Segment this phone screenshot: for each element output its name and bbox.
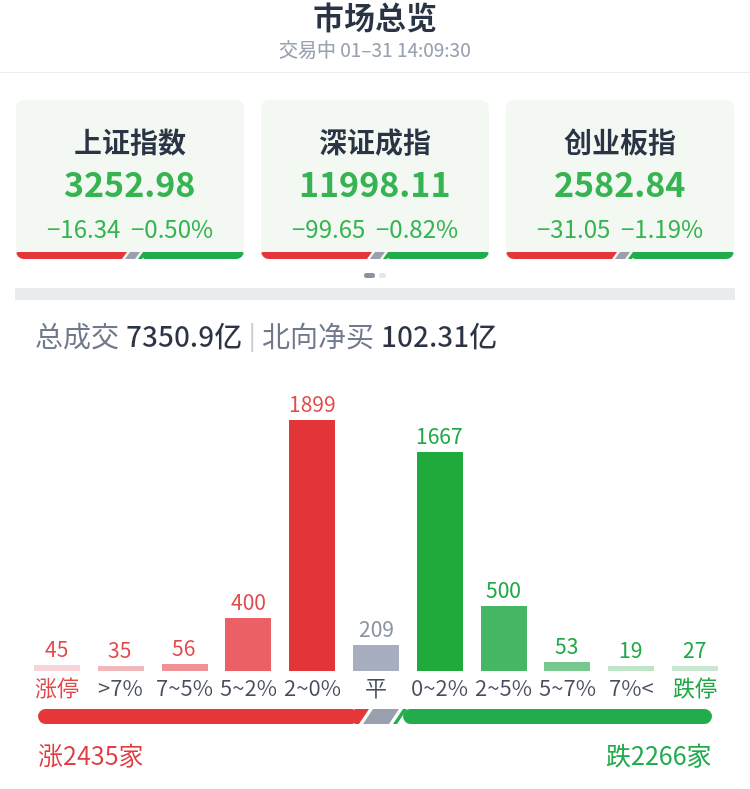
staticText: 500 [486, 574, 521, 600]
staticText: 5~2% [220, 670, 277, 694]
staticText: 北向净买 [262, 315, 381, 345]
staticText: 2582.84 [554, 158, 686, 198]
staticText: >7% [98, 670, 143, 694]
staticText: 0~2% [411, 670, 468, 694]
staticText: 19 [619, 634, 643, 660]
staticText: −99.65 −0.82% [292, 210, 459, 238]
staticText: 涨停 [35, 670, 80, 694]
staticText: 跌2266家 [606, 736, 712, 766]
staticText: 400 [231, 586, 266, 612]
staticText: 5~7% [539, 670, 596, 694]
staticText: 7~5% [156, 670, 213, 694]
staticText: 56 [172, 632, 196, 658]
staticText: 涨2435家 [38, 736, 144, 766]
staticText: 7350.9亿 [126, 315, 243, 345]
staticText: 7%< [609, 670, 654, 694]
staticText: 35 [108, 634, 132, 660]
button[interactable]: 深证成指 [261, 100, 489, 259]
staticText: 45 [45, 633, 69, 659]
staticText: −16.34 −0.50% [47, 210, 214, 238]
staticText: −31.05 −1.19% [537, 210, 704, 238]
staticText: 102.31亿 [381, 315, 498, 345]
staticText: 创业板指 [564, 121, 677, 153]
staticText: 总成交 [35, 315, 126, 345]
staticText: 27 [683, 634, 707, 660]
button[interactable]: 创业板指 [506, 100, 734, 259]
staticText: | [243, 315, 262, 345]
staticText: 1899 [289, 388, 336, 414]
button[interactable]: 上证指数 [16, 100, 244, 259]
staticText: 3252.98 [64, 158, 196, 198]
staticText: 1667 [416, 420, 463, 446]
staticText: 平 [365, 670, 388, 694]
staticText: 2~0% [284, 670, 341, 694]
staticText: 深证成指 [319, 121, 432, 153]
staticText: 市场总览 [313, 0, 437, 29]
staticText: 2~5% [475, 670, 532, 694]
staticText: 11998.11 [299, 158, 451, 198]
staticText: 53 [555, 630, 579, 656]
staticText: 上证指数 [74, 121, 187, 153]
staticText: 交易中 01–31 14:09:30 [279, 35, 471, 61]
staticText: 跌停 [673, 670, 718, 694]
staticText: 209 [359, 613, 394, 639]
